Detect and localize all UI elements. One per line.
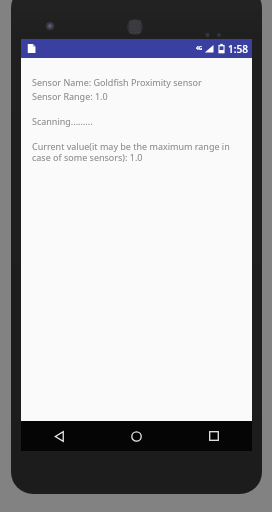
button[interactable]: Home <box>98 421 175 451</box>
staticText: Sensor Range: 1.0 <box>32 90 108 102</box>
staticText: Current value(it may be the maximum rang… <box>32 140 241 164</box>
staticText: 1:58 <box>228 42 248 56</box>
staticText: 4G <box>196 45 203 52</box>
staticText: Sensor Name: Goldfish Proximity sensor <box>32 76 202 88</box>
staticText: Scanning......... <box>32 115 93 127</box>
button[interactable]: Back <box>21 421 98 451</box>
button[interactable]: Recent apps <box>175 421 252 451</box>
